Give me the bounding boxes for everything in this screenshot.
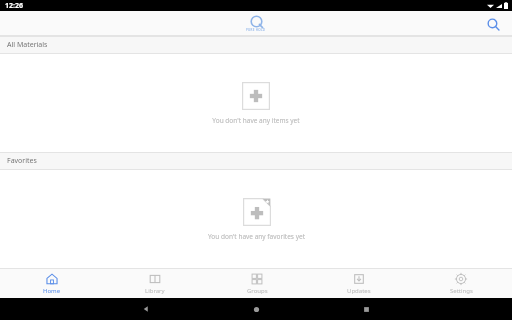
staticText: Home [43, 287, 61, 295]
button[interactable]: Groups [206, 269, 308, 298]
staticText: You don't have any items yet [212, 116, 300, 125]
staticText: Groups [247, 287, 268, 295]
staticText: Library [145, 287, 165, 295]
staticText: 12:26 [5, 1, 23, 11]
staticText: PURE HOLD [246, 28, 266, 32]
button[interactable]: Library [103, 269, 206, 298]
staticText: All Materials [7, 40, 48, 50]
button[interactable]: Home [0, 269, 103, 298]
staticText: Settings [450, 287, 473, 295]
staticText: Favorites [7, 156, 37, 166]
button[interactable]: Search [482, 13, 504, 35]
staticText: Updates [347, 287, 371, 295]
staticText: You don't have any favorites yet [208, 232, 305, 241]
button[interactable]: Settings [410, 269, 512, 298]
button[interactable]: Updates [308, 269, 410, 298]
